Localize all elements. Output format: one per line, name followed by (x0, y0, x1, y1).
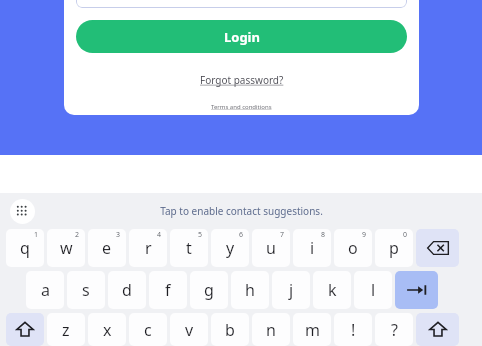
button[interactable]: s (67, 271, 105, 309)
staticText: 8 (321, 230, 326, 240)
staticText: k (328, 279, 337, 301)
button[interactable]: b (211, 313, 249, 346)
button[interactable]: m (293, 313, 331, 346)
staticText: n (266, 319, 276, 341)
staticText: 1 (34, 230, 39, 240)
staticText: m (305, 319, 320, 341)
staticText: a (41, 279, 50, 301)
staticText: 3 (116, 230, 121, 240)
staticText: Login (224, 28, 260, 46)
staticText: 4 (157, 230, 162, 240)
button[interactable]: j (272, 271, 310, 309)
button[interactable]: Next field (395, 271, 438, 309)
staticText: Tap to enable contact suggestions. (160, 204, 323, 218)
button[interactable]: 8 (293, 229, 331, 267)
staticText: s (82, 279, 90, 301)
staticText: 9 (362, 230, 367, 240)
button[interactable]: k (313, 271, 351, 309)
staticText: i (310, 237, 315, 259)
staticText: x (103, 319, 112, 341)
staticText: b (225, 319, 235, 341)
staticText: Forgot password? (200, 73, 284, 87)
staticText: o (348, 237, 358, 259)
button[interactable]: Backspace (416, 229, 459, 267)
staticText: 2 (75, 230, 80, 240)
button[interactable]: l (354, 271, 392, 309)
button[interactable]: f (149, 271, 187, 309)
button[interactable]: Shift (6, 313, 44, 346)
button[interactable]: ! (334, 313, 372, 346)
button[interactable]: c (129, 313, 167, 346)
button[interactable]: Keyboard apps (10, 199, 35, 224)
staticText: h (245, 279, 255, 301)
staticText: e (102, 237, 112, 259)
staticText: ? (391, 319, 398, 341)
button[interactable]: Terms and conditions (208, 100, 275, 114)
staticText: l (371, 279, 376, 301)
button[interactable]: n (252, 313, 290, 346)
staticText: j (289, 279, 294, 301)
button[interactable]: g (190, 271, 228, 309)
button[interactable]: 1 (6, 229, 44, 267)
staticText: d (122, 279, 132, 301)
button[interactable]: Shift (416, 313, 459, 346)
button[interactable]: 3 (88, 229, 126, 267)
button[interactable]: a (26, 271, 64, 309)
button[interactable] (76, 0, 407, 8)
staticText: 0 (403, 230, 408, 240)
button[interactable]: 5 (170, 229, 208, 267)
staticText: g (204, 279, 214, 301)
staticText: z (62, 319, 70, 341)
staticText: q (20, 237, 30, 259)
button[interactable]: 7 (252, 229, 290, 267)
button[interactable]: 4 (129, 229, 167, 267)
staticText: p (389, 237, 399, 259)
button[interactable]: 0 (375, 229, 413, 267)
button[interactable]: 6 (211, 229, 249, 267)
button[interactable]: v (170, 313, 208, 346)
button[interactable]: 9 (334, 229, 372, 267)
button[interactable]: ? (375, 313, 413, 346)
button[interactable]: Forgot password? (196, 69, 288, 91)
staticText: u (266, 237, 276, 259)
staticText: t (186, 237, 192, 259)
staticText: w (60, 237, 73, 259)
button[interactable]: h (231, 271, 269, 309)
button[interactable]: x (88, 313, 126, 346)
button[interactable]: Login (76, 20, 407, 53)
button[interactable]: Tap to enable contact suggestions. (0, 193, 482, 229)
staticText: 7 (280, 230, 285, 240)
staticText: Terms and conditions (211, 103, 272, 111)
staticText: y (226, 237, 235, 259)
staticText: c (144, 319, 152, 341)
button[interactable]: d (108, 271, 146, 309)
staticText: 5 (198, 230, 203, 240)
staticText: 6 (239, 230, 244, 240)
staticText: ! (351, 319, 356, 341)
button[interactable]: z (47, 313, 85, 346)
staticText: v (185, 319, 194, 341)
button[interactable]: 2 (47, 229, 85, 267)
staticText: r (145, 237, 152, 259)
staticText: f (165, 279, 171, 301)
